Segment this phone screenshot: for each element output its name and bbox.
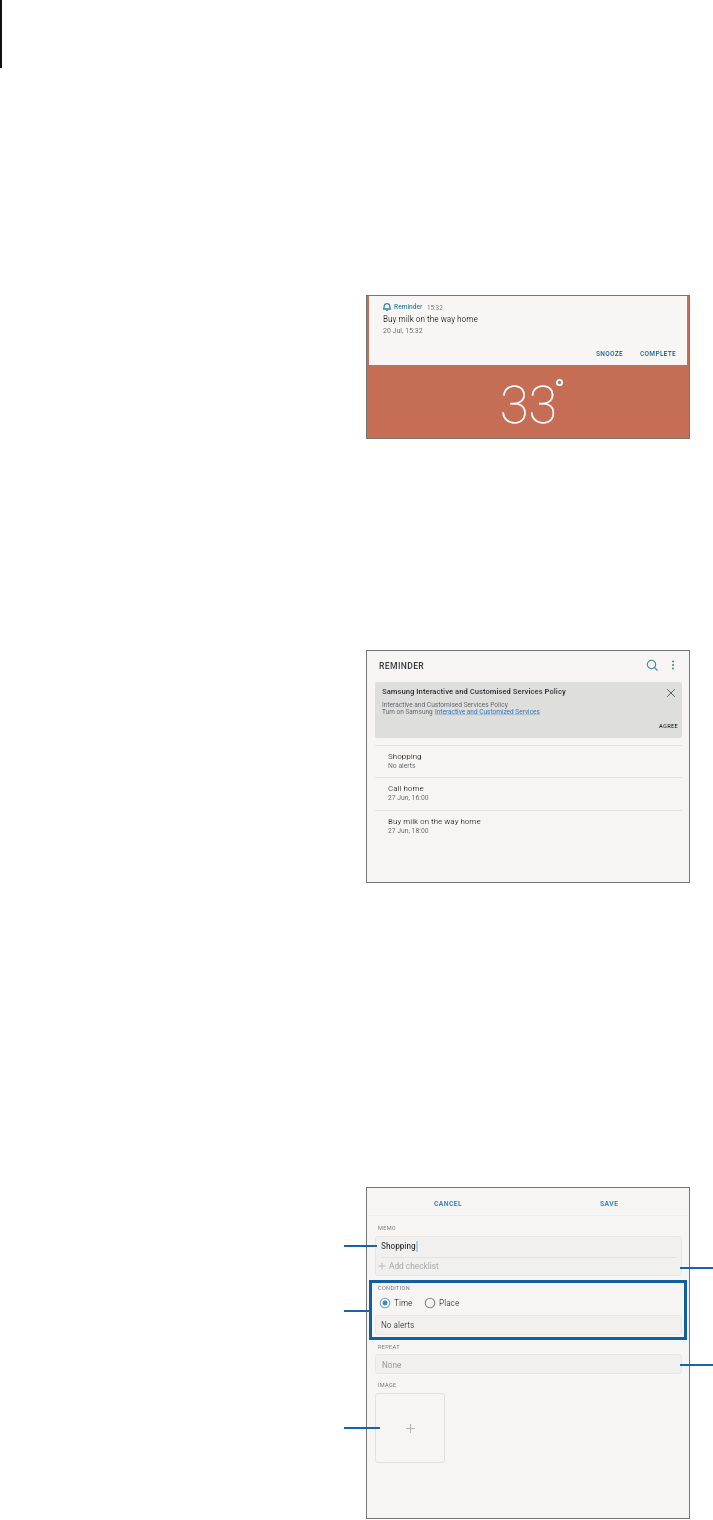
- button[interactable]: AGREE: [656, 720, 682, 732]
- button[interactable]: Search: [642, 655, 662, 675]
- staticText: Buy milk on the way home: [388, 817, 481, 826]
- staticText: MEMO: [378, 1225, 396, 1232]
- staticText: REMINDER: [379, 661, 425, 671]
- button[interactable]: CANCEL: [418, 1196, 478, 1211]
- button[interactable]: COMPLETE: [636, 347, 680, 361]
- button[interactable]: SNOOZE: [591, 347, 627, 361]
- staticText: 27 Jun, 18:00: [388, 827, 429, 835]
- button[interactable]: Buy milk on the way home: [375, 810, 682, 842]
- button[interactable]: More options: [664, 655, 684, 675]
- button[interactable]: No alerts: [375, 1315, 682, 1335]
- staticText: SNOOZE: [596, 350, 623, 358]
- staticText: 15:32: [427, 304, 443, 311]
- staticText: Interactive and Customized Services: [435, 708, 540, 716]
- staticText: Add checklist: [389, 1261, 439, 1271]
- staticText: Interactive and Customised Services Poli…: [382, 701, 508, 709]
- staticText: 20 Jul, 15:32: [383, 327, 423, 335]
- button[interactable]: None: [375, 1354, 682, 1374]
- button[interactable]: Add image: [375, 1393, 445, 1463]
- staticText: Call home: [388, 784, 424, 793]
- button[interactable]: SAVE: [584, 1196, 634, 1211]
- staticText: Samsung Interactive and Customised Servi…: [382, 687, 566, 696]
- staticText: IMAGE: [378, 1382, 397, 1389]
- staticText: No alerts: [388, 762, 416, 770]
- button[interactable]: Time: [377, 1296, 415, 1310]
- button[interactable]: Place: [422, 1296, 462, 1310]
- staticText: Shopping: [381, 1241, 416, 1251]
- button[interactable]: Call home: [375, 777, 682, 809]
- staticText: Shopping: [388, 752, 422, 761]
- staticText: Buy milk on the way home: [383, 314, 478, 324]
- staticText: Time: [394, 1298, 413, 1308]
- staticText: CONDITION: [378, 1285, 410, 1292]
- staticText: 27 Jun, 16:00: [388, 794, 429, 802]
- staticText: AGREE: [659, 723, 679, 730]
- staticText: SAVE: [600, 1200, 619, 1208]
- staticText: CANCEL: [434, 1200, 463, 1208]
- staticText: None: [382, 1360, 402, 1370]
- staticText: COMPLETE: [640, 350, 677, 358]
- staticText: Turn on Samsung: [382, 708, 435, 716]
- staticText: Reminder: [394, 303, 423, 311]
- button[interactable]: Shopping: [375, 745, 682, 777]
- staticText: No alerts: [381, 1320, 415, 1330]
- staticText: REPEAT: [378, 1344, 400, 1351]
- staticText: 33: [500, 375, 557, 436]
- button[interactable]: Shopping: [375, 1236, 682, 1276]
- button[interactable]: Close: [663, 685, 679, 701]
- staticText: Place: [439, 1298, 460, 1308]
